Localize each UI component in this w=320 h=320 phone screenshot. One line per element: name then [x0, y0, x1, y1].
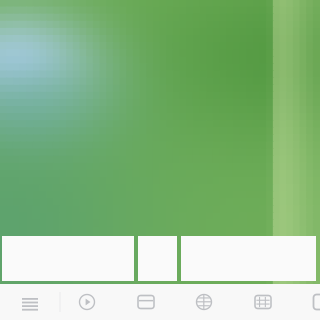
button[interactable]: Grid — [241, 284, 285, 320]
button[interactable]: Sidebar — [8, 284, 52, 320]
button[interactable]: Browser — [182, 284, 226, 320]
button[interactable]: Window — [124, 284, 168, 320]
button[interactable]: Play — [65, 284, 109, 320]
button[interactable]: More — [299, 284, 320, 320]
